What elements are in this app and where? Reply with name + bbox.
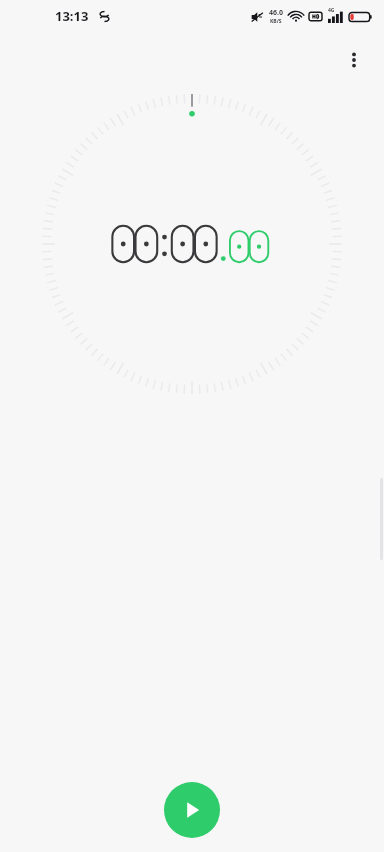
staticText: 13:13 (55, 7, 89, 25)
staticText: KB/S (270, 18, 282, 25)
staticText: 4G (328, 7, 335, 14)
button[interactable]: More options (332, 38, 376, 82)
button[interactable]: Start (164, 782, 220, 838)
staticText: 46.0 (269, 8, 283, 18)
